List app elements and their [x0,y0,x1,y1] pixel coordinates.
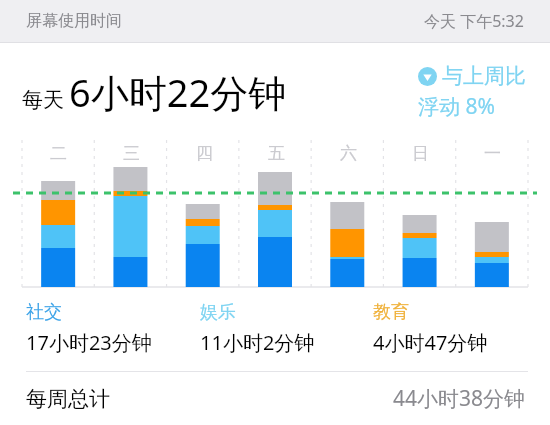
button[interactable]: 每周总计 [0,372,550,425]
staticText: 教育 [373,301,409,324]
staticText: 每周总计 [26,386,110,412]
staticText: 4小时47分钟 [373,329,488,356]
button[interactable]: 教育 [373,301,532,356]
staticText: 娱乐 [200,301,236,324]
staticText: 11小时2分钟 [200,329,315,356]
staticText: 浮动 8% [418,92,495,121]
staticText: 社交 [26,301,62,324]
staticText: 三 [123,143,140,164]
staticText: 与上周比 [442,63,526,89]
staticText: 44小时38分钟 [393,384,526,413]
staticText: 今天 下午5:32 [424,10,524,32]
staticText: 17小时23分钟 [26,329,152,356]
button[interactable]: 社交 [26,301,200,356]
staticText: 一 [484,143,501,164]
staticText: 每天 [22,87,64,113]
button[interactable]: 娱乐 [200,301,373,356]
button[interactable]: 与上周比下降 [418,63,526,121]
staticText: 6小时22分钟 [69,66,287,118]
staticText: 六 [340,143,357,164]
other: 与上周比下降 [418,67,437,86]
staticText: 五 [268,143,285,164]
staticText: 日 [412,143,429,164]
staticText: 四 [196,143,213,164]
staticText: 屏幕使用时间 [26,11,122,31]
staticText: 二 [50,143,67,164]
